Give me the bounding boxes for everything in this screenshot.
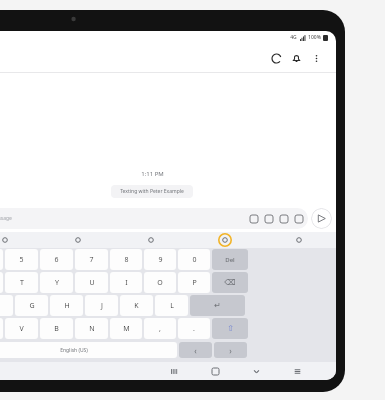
staticText: 100% xyxy=(308,34,321,41)
button[interactable]: Call xyxy=(266,48,286,68)
staticText: H xyxy=(64,301,70,311)
button[interactable]: Home xyxy=(195,362,236,380)
staticText: G xyxy=(29,301,35,311)
button[interactable]: Next xyxy=(214,342,247,358)
staticText: › xyxy=(229,345,232,356)
staticText: Text message xyxy=(0,215,12,222)
button[interactable]: I xyxy=(110,272,142,293)
staticText: 4G xyxy=(290,34,297,41)
staticText: ‹ xyxy=(194,345,197,356)
button[interactable]: Gallery xyxy=(291,211,306,226)
button[interactable]: J xyxy=(85,295,118,316)
staticText: 8 xyxy=(124,255,129,265)
staticText: ↵ xyxy=(214,301,221,310)
button[interactable]: V xyxy=(5,318,38,339)
staticText: . xyxy=(193,324,195,334)
button[interactable]: Previous xyxy=(179,342,212,358)
button[interactable]: K xyxy=(120,295,153,316)
staticText: 0 xyxy=(192,255,197,265)
button[interactable]: H xyxy=(50,295,83,316)
staticText: T xyxy=(20,278,24,288)
button[interactable]: B xyxy=(40,318,73,339)
button[interactable]: English (US) xyxy=(0,342,177,358)
button[interactable]: 7 xyxy=(75,249,108,270)
staticText: V xyxy=(19,324,24,334)
button[interactable]: Translate xyxy=(41,232,114,248)
button[interactable]: O xyxy=(144,272,176,293)
button[interactable]: M xyxy=(110,318,142,339)
button[interactable]: 6 xyxy=(40,249,73,270)
staticText: M xyxy=(123,324,130,334)
staticText: ⌫ xyxy=(224,278,236,287)
button[interactable]: ↵ xyxy=(190,295,245,316)
button[interactable]: Text message xyxy=(0,208,308,229)
button[interactable]: Expand xyxy=(262,232,336,248)
staticText: Texting with Peter Example xyxy=(120,188,184,195)
button[interactable]: More options xyxy=(306,48,326,68)
button[interactable]: . xyxy=(178,318,210,339)
staticText: 6 xyxy=(54,255,59,265)
button[interactable]: 9 xyxy=(144,249,176,270)
button[interactable]: , xyxy=(144,318,176,339)
button[interactable]: Voice input xyxy=(114,232,188,248)
staticText: English (US) xyxy=(60,347,88,354)
staticText: 1:11 PM xyxy=(141,170,164,178)
button[interactable]: G xyxy=(15,295,48,316)
button[interactable]: Recents xyxy=(153,362,195,380)
staticText: , xyxy=(159,324,161,334)
button[interactable]: 8 xyxy=(110,249,142,270)
staticText: U xyxy=(89,278,95,288)
staticText: B xyxy=(54,324,59,334)
staticText: P xyxy=(192,278,197,288)
staticText: 9 xyxy=(158,255,163,265)
staticText: O xyxy=(157,278,163,288)
button[interactable]: Y xyxy=(40,272,73,293)
button[interactable]: 0 xyxy=(178,249,210,270)
staticText: Del xyxy=(225,256,235,264)
staticText: L xyxy=(170,301,174,311)
button[interactable]: Emoji xyxy=(246,211,261,226)
button[interactable]: T xyxy=(5,272,38,293)
staticText: K xyxy=(134,301,139,311)
button[interactable]: Send xyxy=(311,208,332,229)
button[interactable]: Hide keyboard xyxy=(236,362,277,380)
button[interactable]: Keyboard settings xyxy=(188,232,262,248)
button[interactable]: GIF xyxy=(276,211,291,226)
button[interactable]: Notifications xyxy=(286,48,306,68)
button[interactable]: Del xyxy=(212,249,248,270)
button[interactable]: U xyxy=(75,272,108,293)
staticText: Y xyxy=(55,278,59,288)
button[interactable]: R xyxy=(0,272,3,293)
button[interactable]: 4 xyxy=(0,249,3,270)
button[interactable]: P xyxy=(178,272,210,293)
staticText: J xyxy=(101,301,103,311)
button[interactable]: Sticker xyxy=(261,211,276,226)
staticText: 7 xyxy=(89,255,94,265)
staticText: I xyxy=(125,278,128,288)
button[interactable]: C xyxy=(0,318,3,339)
button[interactable]: Switch keyboard xyxy=(277,362,318,380)
button[interactable]: Clipboard xyxy=(0,232,41,248)
button[interactable]: L xyxy=(155,295,188,316)
staticText: ⇧ xyxy=(227,324,234,333)
button[interactable]: N xyxy=(75,318,108,339)
staticText: N xyxy=(89,324,95,334)
button[interactable]: ⌫ xyxy=(212,272,248,293)
staticText: 5 xyxy=(19,255,24,265)
button[interactable]: ⇧ xyxy=(212,318,248,339)
button[interactable]: 5 xyxy=(5,249,38,270)
